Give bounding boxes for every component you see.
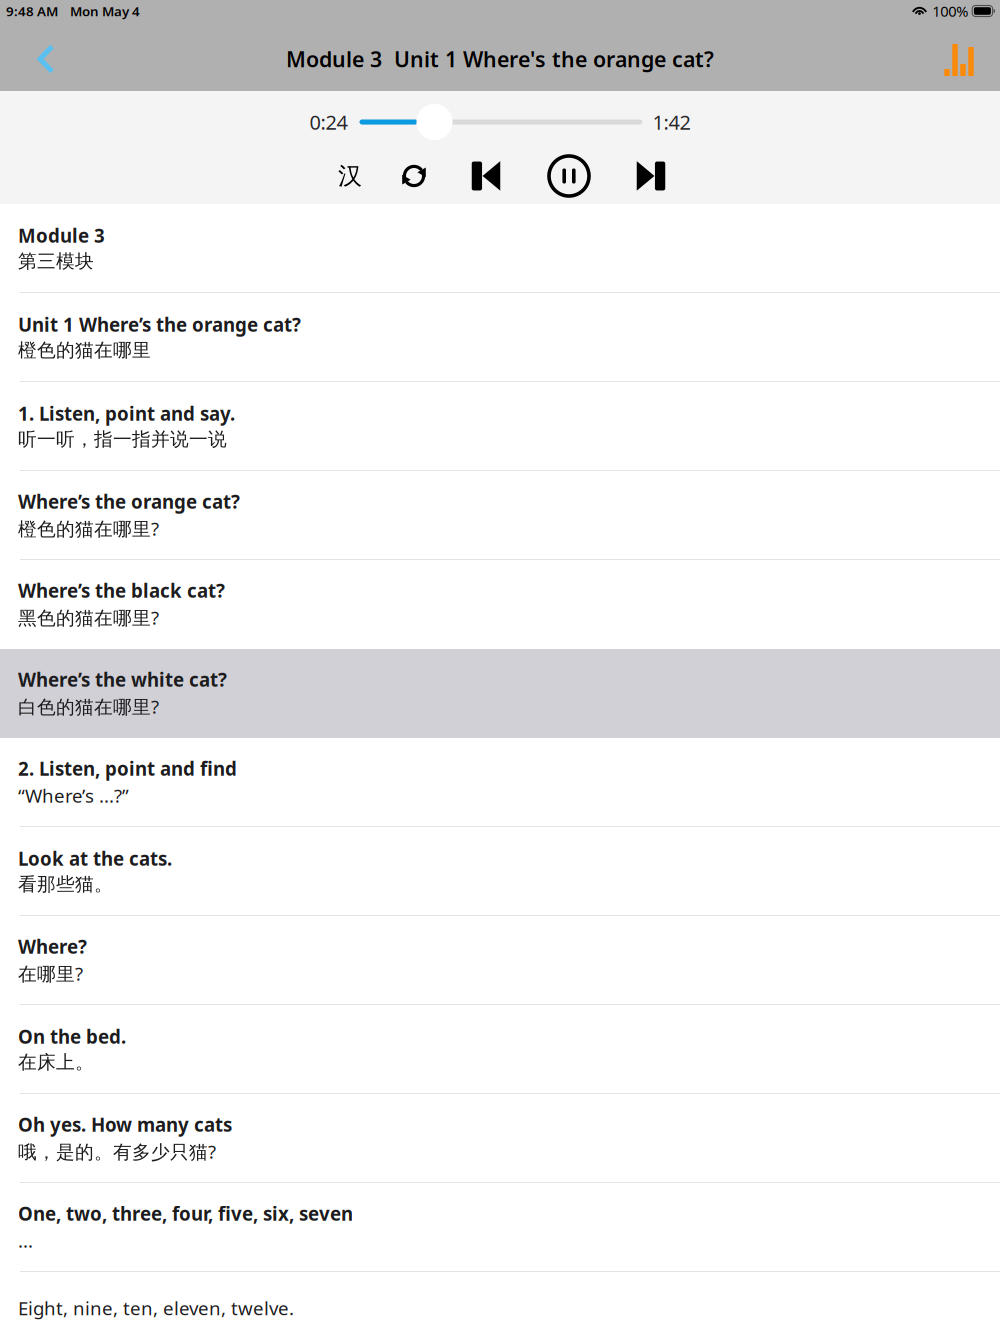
staticText: Mon May 4 <box>70 2 140 20</box>
button[interactable]: Repeat <box>385 150 443 202</box>
staticText: Where? <box>18 934 87 959</box>
button[interactable]: Where’s the orange cat? <box>0 471 1000 560</box>
button[interactable]: Unit 1 Where’s the orange cat? <box>0 293 1000 382</box>
staticText: Look at the cats. <box>18 846 172 871</box>
staticText: 橙色的猫在哪里 <box>18 339 151 362</box>
button[interactable]: Look at the cats. <box>0 827 1000 916</box>
staticText: Module 3 <box>18 223 105 248</box>
staticText: 100% <box>932 1 968 21</box>
staticText: 9:48 AM <box>6 2 58 20</box>
staticText: Unit 1 Where’s the orange cat? <box>18 312 301 337</box>
button[interactable]: 1. Listen, point and say. <box>0 382 1000 471</box>
button[interactable]: Where’s the black cat? <box>0 560 1000 649</box>
staticText: 白色的猫在哪里? <box>18 694 159 719</box>
staticText: 听一听，指一指并说一说 <box>18 428 227 451</box>
staticText: On the bed. <box>18 1024 126 1049</box>
button[interactable]: Where? <box>0 916 1000 1005</box>
button[interactable]: Module 3 <box>0 204 1000 293</box>
staticText: 2. Listen, point and find <box>18 756 237 781</box>
staticText: One, two, three, four, five, six, seven <box>18 1201 353 1226</box>
staticText: 哦，是的。有多少只猫? <box>18 1139 216 1164</box>
button[interactable]: Previous sentence <box>455 150 517 202</box>
staticText: Where’s the white cat? <box>18 667 227 692</box>
staticText: 看那些猫。 <box>18 873 113 896</box>
staticText: Where’s the black cat? <box>18 578 225 603</box>
staticText: 1. Listen, point and say. <box>18 401 235 426</box>
staticText: Eight, nine, ten, eleven, twelve. <box>18 1296 294 1320</box>
staticText: “Where’s ...?” <box>18 783 129 808</box>
button[interactable]: Back <box>19 29 73 89</box>
staticText: 1:42 <box>652 109 690 135</box>
staticText: 黑色的猫在哪里? <box>18 605 159 630</box>
staticText: ... <box>18 1228 33 1253</box>
button[interactable]: Pause <box>536 150 602 202</box>
staticText: 在哪里? <box>18 961 83 986</box>
button[interactable]: Audio level <box>930 30 988 90</box>
staticText: 第三模块 <box>18 250 94 273</box>
button[interactable]: Eight, nine, ten, eleven, twelve. <box>0 1272 1000 1334</box>
button[interactable]: Show Chinese <box>322 150 378 202</box>
button[interactable]: Next sentence <box>620 150 682 202</box>
staticText: 在床上。 <box>18 1051 94 1074</box>
button[interactable]: 2. Listen, point and find <box>0 738 1000 827</box>
staticText: 0:24 <box>309 109 347 135</box>
staticText: 橙色的猫在哪里? <box>18 516 159 541</box>
button[interactable]: One, two, three, four, five, six, seven <box>0 1183 1000 1272</box>
staticText: 汉 <box>338 161 362 191</box>
button[interactable]: Oh yes. How many cats <box>0 1094 1000 1183</box>
staticText: Oh yes. How many cats <box>18 1112 232 1137</box>
button[interactable]: On the bed. <box>0 1005 1000 1094</box>
button[interactable]: Where’s the white cat? <box>0 649 1000 738</box>
staticText: Module 3 Unit 1 Where's the orange cat? <box>286 45 714 73</box>
staticText: Where’s the orange cat? <box>18 489 240 514</box>
